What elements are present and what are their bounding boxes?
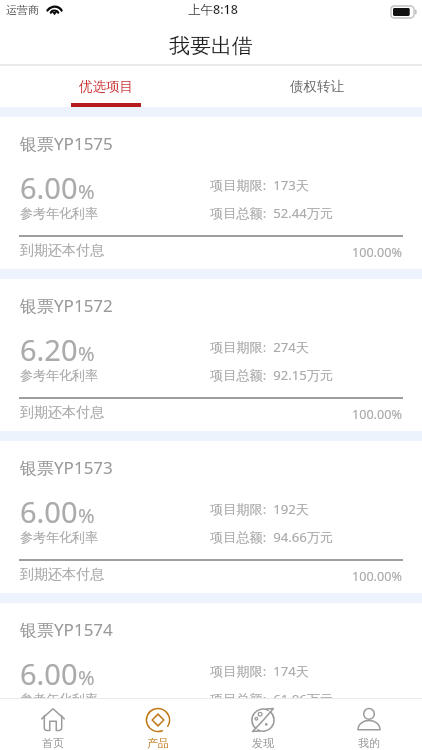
staticText: 债权转让 — [290, 78, 344, 95]
button[interactable]: 银票YP1573 — [0, 441, 422, 593]
staticText: 产品 — [147, 736, 169, 750]
staticText: 银票YP1575 — [20, 132, 113, 155]
staticText: 项目期限: 173天 — [210, 176, 309, 194]
button[interactable]: 银票YP1572 — [0, 279, 422, 431]
button[interactable]: 银票YP1574 — [0, 603, 422, 698]
staticText: 参考年化利率 — [20, 691, 98, 698]
staticText: % — [78, 502, 95, 529]
staticText: 首页 — [42, 736, 64, 750]
button[interactable]: 首页 — [0, 699, 105, 750]
staticText: 上午8:18 — [188, 1, 238, 18]
staticText: 6.20 — [20, 330, 78, 369]
staticText: 项目总额: 52.44万元 — [210, 204, 334, 222]
staticText: 参考年化利率 — [20, 205, 98, 221]
staticText: 项目总额: 61.06万元 — [210, 690, 334, 698]
button[interactable]: 发现 — [210, 699, 316, 750]
staticText: 6.00 — [20, 168, 78, 207]
staticText: 银票YP1574 — [20, 618, 113, 641]
staticText: 运营商 — [6, 3, 39, 17]
staticText: 100.00% — [352, 406, 402, 423]
staticText: 发现 — [252, 736, 274, 750]
staticText: % — [78, 340, 95, 367]
staticText: 6.00 — [20, 492, 78, 531]
staticText: 100.00% — [352, 568, 402, 585]
staticText: 项目期限: 192天 — [210, 500, 309, 518]
staticText: 到期还本付息 — [20, 404, 104, 422]
button[interactable]: 我的 — [316, 699, 422, 750]
button[interactable]: 产品 — [105, 699, 210, 750]
staticText: % — [78, 178, 95, 205]
staticText: 参考年化利率 — [20, 529, 98, 545]
staticText: 项目总额: 92.15万元 — [210, 366, 334, 384]
staticText: 项目总额: 94.66万元 — [210, 528, 334, 546]
staticText: 项目期限: 174天 — [210, 662, 309, 680]
staticText: 6.00 — [20, 654, 78, 693]
staticText: 我的 — [358, 736, 380, 750]
staticText: 项目期限: 274天 — [210, 338, 309, 356]
staticText: 到期还本付息 — [20, 566, 104, 584]
staticText: 银票YP1572 — [20, 294, 113, 317]
button[interactable]: 债权转让 — [211, 66, 422, 107]
staticText: 到期还本付息 — [20, 242, 104, 260]
staticText: 参考年化利率 — [20, 367, 98, 383]
staticText: 银票YP1573 — [20, 456, 113, 479]
staticText: % — [78, 664, 95, 691]
staticText: 100.00% — [352, 244, 402, 261]
staticText: 我要出借 — [169, 33, 253, 59]
staticText: 优选项目 — [79, 78, 133, 95]
button[interactable]: 银票YP1575 — [0, 117, 422, 269]
button[interactable]: 优选项目 — [0, 66, 211, 107]
